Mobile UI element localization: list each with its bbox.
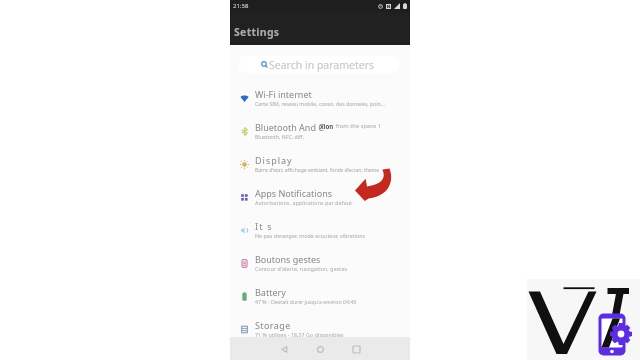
staticText: 21:58 [233, 2, 249, 10]
button[interactable]: Back [273, 338, 295, 360]
staticText: Settings [234, 25, 280, 39]
button[interactable]: Storage [230, 312, 410, 345]
staticText: Storage [255, 319, 291, 331]
button[interactable]: It s [230, 213, 410, 246]
button[interactable]: Battery [230, 279, 410, 312]
staticText: 47 % - Devrait durer jusqu'a environ 04:… [255, 298, 357, 305]
button[interactable]: Home [309, 338, 331, 360]
staticText: Battery [255, 286, 286, 298]
button[interactable]: Apps Notifications [230, 180, 410, 213]
staticText: 71 % utilises - 18,57 Go disponibles [255, 331, 344, 338]
button[interactable]: Boutons gestes [230, 246, 410, 279]
staticText: Wi-Fi internet [255, 88, 312, 100]
button[interactable]: Wi-Fi internet [230, 81, 410, 114]
staticText: Contour d'alerte, navigation, gestes [255, 265, 348, 272]
staticText: Bluetooth And C [255, 121, 324, 133]
staticText: Search in parameters [269, 58, 375, 72]
staticText: Autorisations, applications par defaut [255, 199, 353, 206]
staticText: Display [255, 154, 293, 166]
staticText: Apps Notifications [255, 187, 333, 199]
staticText: from the space 1 [334, 122, 382, 130]
button[interactable]: Bluetooth And C [230, 114, 410, 147]
staticText: Carte SIM, reseau mobile, conso. des don… [255, 100, 385, 107]
staticText: Ne pas deranger, mode ecouteur, vibratio… [255, 232, 366, 239]
staticText: xion [320, 122, 334, 130]
staticText: Boutons gestes [255, 253, 321, 265]
button[interactable]: Display [230, 147, 410, 180]
staticText: It s [255, 220, 273, 232]
staticText: Barre d'etat, affichage ambiant, fonds d… [255, 166, 380, 173]
button[interactable]: Search in parameters [238, 56, 399, 73]
button[interactable]: Recents [345, 338, 367, 360]
staticText: Bluetooth, NFC, diff. [255, 133, 304, 140]
